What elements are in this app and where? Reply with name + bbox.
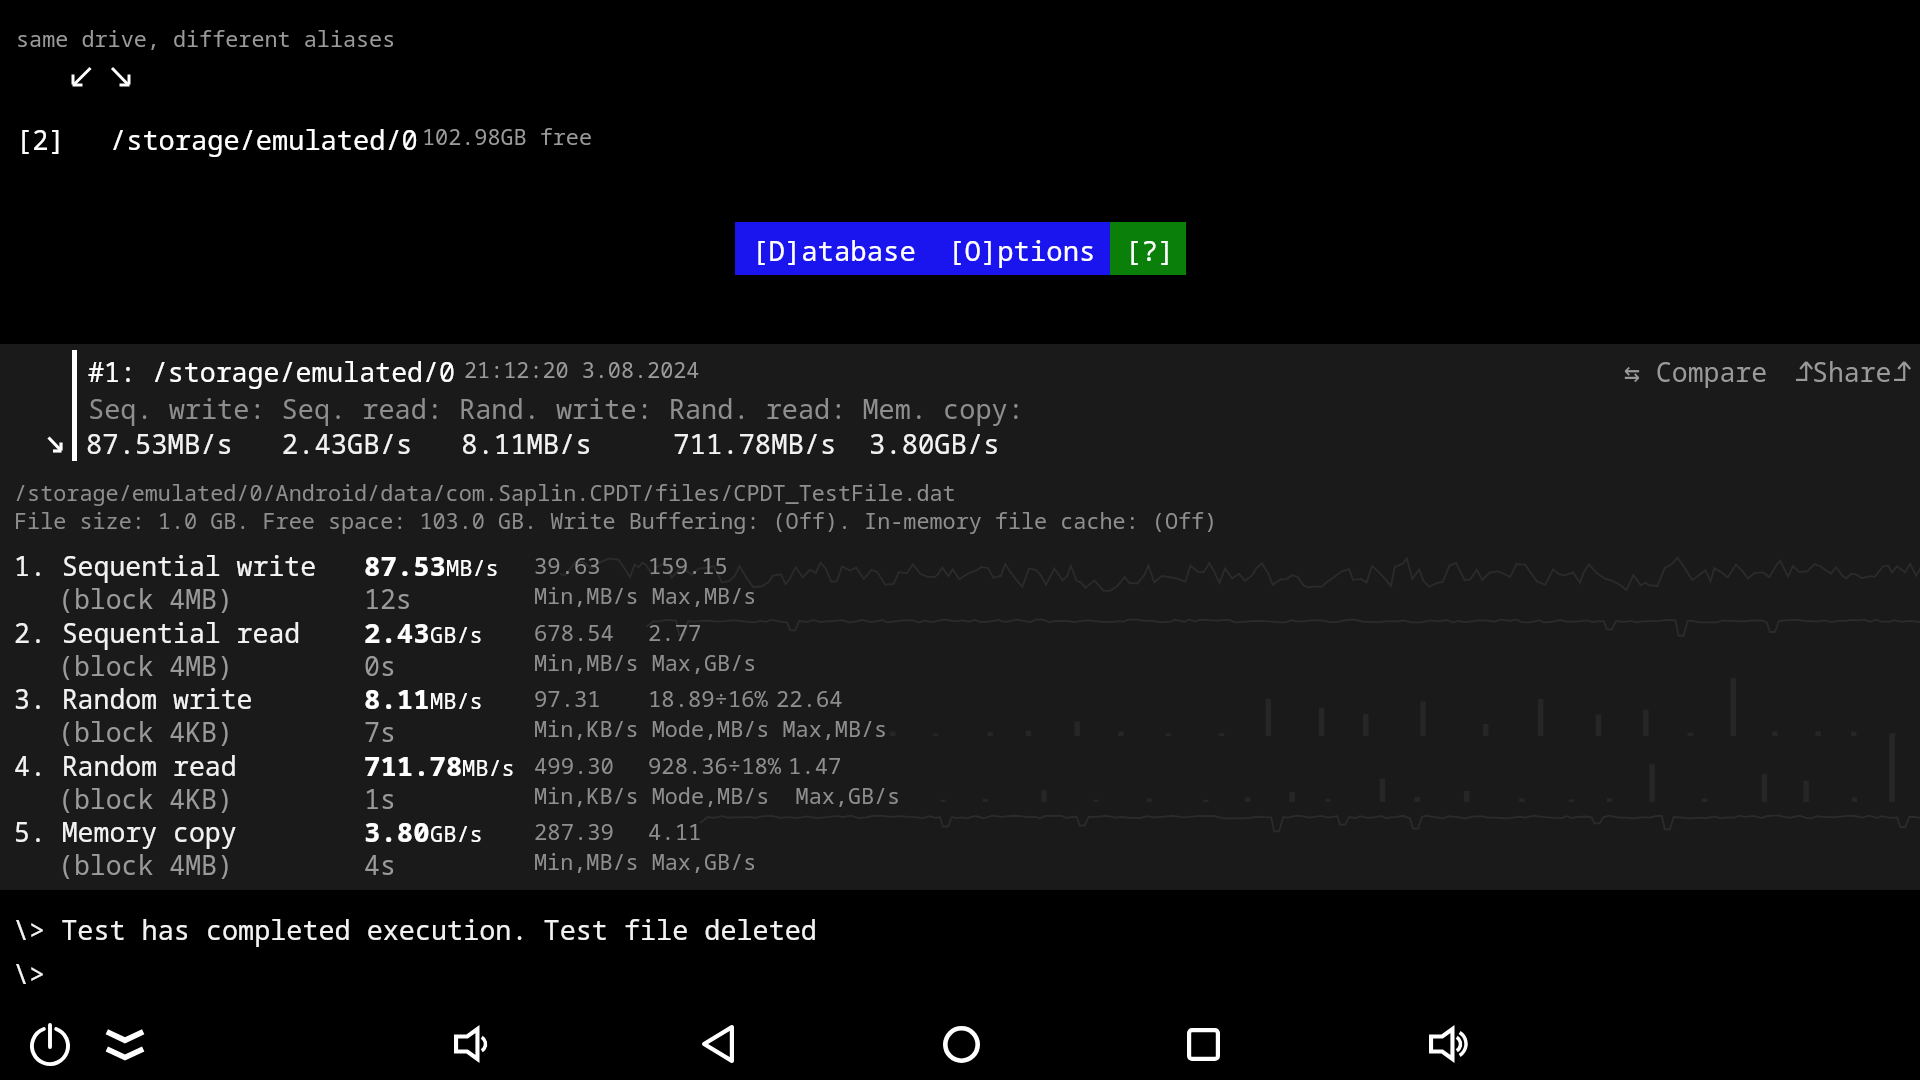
button[interactable]: Home — [921, 1004, 1001, 1080]
button[interactable]: Volume up — [1408, 1004, 1488, 1080]
staticText: Min,MB/s Max,GB/s — [534, 648, 757, 678]
staticText: 4. Random read — [14, 748, 237, 784]
staticText: (block 4MB) — [58, 648, 233, 684]
staticText: 2.43 — [364, 614, 430, 651]
staticText: same drive, different aliases — [16, 24, 396, 54]
button[interactable]: ⇆ Compare — [1614, 354, 1774, 388]
staticText: 7s — [364, 714, 396, 750]
button[interactable]: Recent apps — [1163, 1004, 1243, 1080]
staticText: 4s — [364, 847, 396, 883]
staticText: 2.77 — [648, 617, 702, 647]
staticText: 678.54 — [534, 617, 614, 647]
staticText: GB/s — [430, 818, 483, 848]
staticText: 87.53MB/s 2.43GB/s 8.11MB/s 711.78MB/s 3… — [86, 425, 1000, 462]
staticText: 499.30 — [534, 750, 614, 780]
staticText: MB/s — [446, 552, 499, 582]
staticText: 3.80 — [364, 813, 430, 850]
staticText: (block 4MB) — [58, 581, 233, 617]
staticText: /storage/emulated/0/Android/data/com.Sap… — [14, 478, 956, 508]
staticText: [D]atabase — [752, 232, 916, 269]
button[interactable]: Expand quick settings — [85, 1004, 165, 1080]
staticText: [O]ptions — [948, 232, 1096, 269]
staticText: 97.31 — [534, 683, 601, 713]
staticText: \> — [13, 955, 46, 992]
staticText: Seq. write: Seq. read: Rand. write: Rand… — [88, 390, 1024, 427]
staticText: Min,KB/s Mode,MB/s Max,GB/s — [534, 781, 901, 811]
staticText: GB/s — [430, 619, 483, 649]
button[interactable]: Volume down — [431, 1004, 511, 1080]
button[interactable]: Share — [1792, 354, 1912, 388]
staticText: \> Test has completed execution. Test fi… — [13, 911, 817, 948]
staticText: [?] — [1125, 232, 1175, 269]
staticText: 102.98GB free — [422, 122, 593, 152]
staticText: 3. Random write — [14, 681, 253, 717]
staticText: 928.36÷18% — [648, 750, 782, 780]
staticText: 1. Sequential write — [14, 548, 317, 584]
button[interactable] — [735, 222, 923, 275]
staticText: 8.11 — [364, 680, 430, 717]
staticText: #1: /storage/emulated/0 — [88, 354, 455, 390]
staticText: 2. Sequential read — [14, 615, 301, 651]
staticText: (block 4MB) — [58, 847, 233, 883]
staticText: /storage/emulated/0 — [110, 121, 418, 158]
staticText: 87.53 — [364, 547, 446, 584]
staticText: 1s — [364, 781, 396, 817]
staticText: 287.39 — [534, 816, 614, 846]
staticText: 0s — [364, 648, 396, 684]
staticText: 159.15 — [648, 550, 728, 580]
staticText: 1.47 — [788, 750, 842, 780]
staticText: 4.11 — [648, 816, 702, 846]
staticText: MB/s — [430, 685, 483, 715]
staticText: [2] — [16, 121, 65, 158]
staticText: Min,MB/s Max,MB/s — [534, 581, 757, 611]
staticText: 711.78 — [364, 747, 463, 784]
staticText: 39.63 — [534, 550, 601, 580]
staticText: ⇆ Compare — [1624, 354, 1768, 388]
staticText: Min,MB/s Max,GB/s — [534, 847, 757, 877]
staticText: 22.64 — [776, 683, 843, 713]
staticText: Share — [1812, 354, 1892, 388]
staticText: 18.89÷16% — [648, 683, 768, 713]
button[interactable]: Back — [677, 1004, 757, 1080]
staticText: (block 4KB) — [58, 781, 233, 817]
staticText: Min,KB/s Mode,MB/s Max,MB/s — [534, 714, 888, 744]
button[interactable]: Power — [10, 1004, 90, 1080]
staticText: File size: 1.0 GB. Free space: 103.0 GB.… — [14, 506, 1218, 536]
button[interactable] — [923, 222, 1110, 275]
staticText: 21:12:20 3.08.2024 — [464, 355, 700, 385]
staticText: MB/s — [462, 752, 515, 782]
staticText: (block 4KB) — [58, 714, 233, 750]
staticText: 5. Memory copy — [14, 814, 237, 850]
button[interactable]: [?] — [1110, 222, 1186, 275]
staticText: 12s — [364, 581, 412, 617]
